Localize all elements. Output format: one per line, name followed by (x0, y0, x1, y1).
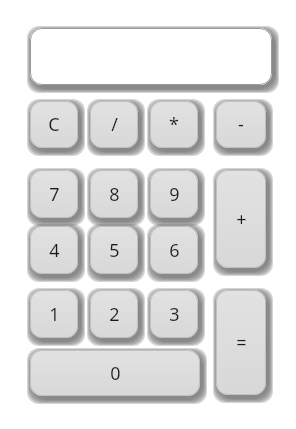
button[interactable]: / (90, 101, 138, 148)
button[interactable]: 7 (30, 170, 78, 218)
staticText: - (238, 112, 244, 137)
button[interactable]: 0 (30, 350, 200, 396)
staticText: 0 (110, 361, 121, 386)
button[interactable]: 6 (150, 226, 198, 274)
button[interactable]: 4 (30, 226, 78, 274)
staticText: 4 (49, 238, 60, 263)
button[interactable]: = (216, 290, 266, 395)
button[interactable]: Display (30, 28, 272, 85)
staticText: * (169, 112, 179, 137)
staticText: 3 (169, 302, 180, 327)
staticText: 6 (169, 238, 180, 263)
staticText: 2 (109, 302, 120, 327)
button[interactable]: 9 (150, 170, 198, 218)
staticText: / (111, 112, 118, 137)
staticText: + (236, 207, 247, 232)
button[interactable]: 3 (150, 290, 198, 338)
staticText: 9 (169, 182, 180, 207)
button[interactable]: + (216, 170, 266, 268)
staticText: 8 (109, 182, 120, 207)
button[interactable]: - (216, 101, 266, 148)
button[interactable]: * (150, 101, 198, 148)
staticText: 7 (49, 182, 60, 207)
button[interactable]: 8 (90, 170, 138, 218)
button[interactable]: 5 (90, 226, 138, 274)
staticText: C (48, 112, 60, 137)
button[interactable]: 2 (90, 290, 138, 338)
staticText: = (236, 330, 247, 355)
button[interactable]: C (30, 101, 78, 148)
button[interactable]: 1 (30, 290, 78, 338)
staticText: 5 (109, 238, 120, 263)
staticText: 1 (49, 302, 60, 327)
